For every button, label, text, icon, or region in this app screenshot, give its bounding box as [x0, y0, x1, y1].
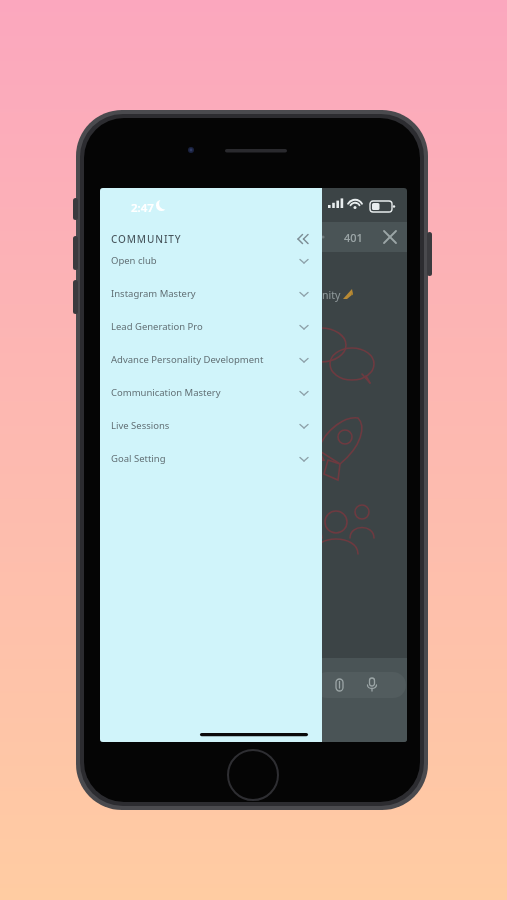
button[interactable]: 401	[336, 224, 370, 250]
button[interactable]: Instagram Mastery	[100, 277, 322, 310]
button[interactable]: Collapse drawer	[294, 229, 314, 249]
staticText: Lead Generation Pro	[111, 320, 203, 333]
staticText: Open club	[111, 254, 157, 267]
button[interactable]: Communication Mastery	[100, 376, 322, 409]
button[interactable]: Lead Generation Pro	[100, 310, 322, 343]
staticText: Communication Mastery	[111, 386, 221, 399]
button[interactable]: COMMUNITY	[100, 228, 322, 250]
staticText: 2:47	[131, 200, 154, 216]
staticText: Goal Setting	[111, 452, 166, 465]
button[interactable]: Goal Setting	[100, 442, 322, 475]
staticText: Advance Personality Development	[111, 353, 264, 366]
staticText: nity	[322, 288, 341, 302]
staticText: COMMUNITY	[111, 232, 182, 246]
staticText: 401	[344, 230, 363, 245]
staticText: Instagram Mastery	[111, 287, 196, 300]
button[interactable]: Advance Personality Development	[100, 343, 322, 376]
staticText: Live Sessions	[111, 419, 170, 432]
button[interactable]: Close	[377, 224, 403, 250]
button[interactable]: Live Sessions	[100, 409, 322, 442]
button[interactable]: Open club	[100, 244, 322, 277]
